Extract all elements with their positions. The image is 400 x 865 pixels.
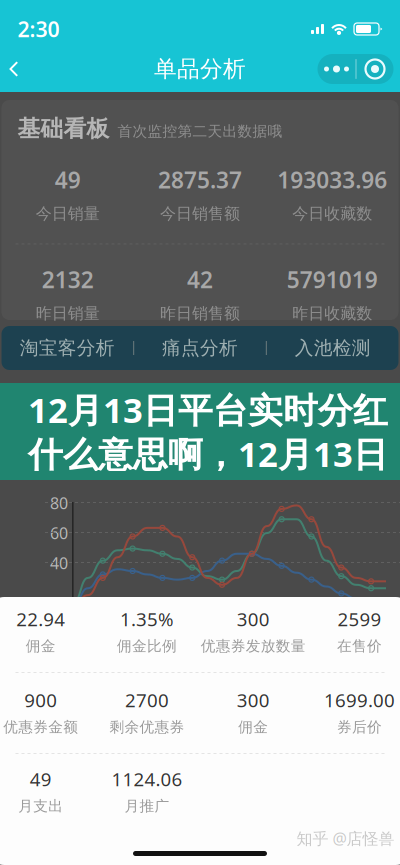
staticText: 单品分析 [154,55,246,83]
staticText: 40 [50,552,68,574]
staticText: 在售价 [337,637,382,655]
staticText: 什么意思啊，12月13日 [28,430,388,476]
staticText: 今日销售额 [160,204,240,223]
staticText: 佣金 [238,718,268,736]
staticText: 首次监控第二天出数据哦 [117,122,282,140]
staticText: 300 [237,607,270,631]
staticText: 淘宝客分析 [20,336,115,359]
staticText: 1.35% [120,607,174,631]
staticText: 昨日销售额 [160,303,240,323]
staticText: 900 [24,688,57,712]
staticText: 昨日销量 [36,303,100,323]
staticText: 今日销量 [36,204,100,223]
staticText: 2:30 [17,15,59,43]
staticText: 优惠券金额 [3,718,78,736]
button[interactable]: Close mini program [356,54,393,84]
staticText: 剩余优惠券 [109,718,184,736]
staticText: 49 [55,165,81,195]
staticText: 基础看板 [17,115,109,143]
staticText: 券后价 [337,718,382,736]
staticText: 昨日收藏数 [292,303,372,323]
staticText: 5791019 [287,264,378,294]
staticText: 49 [30,767,52,791]
staticText: 知乎 @店怪兽 [296,828,394,849]
staticText: 193033.96 [277,165,387,195]
staticText: 2700 [125,688,169,712]
staticText: 22.94 [16,607,65,631]
staticText: 优惠券发放数量 [201,637,306,655]
staticText: 入池检测 [295,336,371,359]
staticText: 42 [187,264,213,294]
button[interactable]: 痛点分析 [134,326,266,370]
staticText: 12月13日平台实时分红 [28,386,388,432]
button[interactable]: More options [317,54,355,84]
staticText: 月支出 [18,797,63,815]
button[interactable]: 淘宝客分析 [1,326,133,370]
staticText: 2599 [337,607,381,631]
staticText: 2875.37 [158,165,242,195]
staticText: 300 [237,688,270,712]
staticText: 痛点分析 [162,336,238,359]
button[interactable]: Back [0,50,33,87]
staticText: 月推广 [124,797,169,815]
staticText: 1124.06 [111,767,182,791]
staticText: 佣金比例 [117,637,177,655]
staticText: 60 [50,522,68,544]
staticText: 80 [50,492,68,514]
button[interactable]: 入池检测 [267,326,398,370]
staticText: 佣金 [26,637,56,655]
staticText: 1699.00 [324,688,395,712]
staticText: 今日收藏数 [292,204,372,223]
staticText: 2132 [42,264,94,294]
